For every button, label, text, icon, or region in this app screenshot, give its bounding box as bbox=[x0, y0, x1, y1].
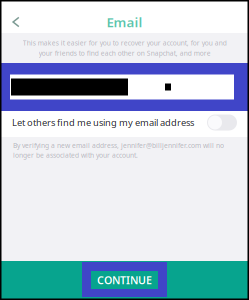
button[interactable]: Email address bbox=[10, 74, 234, 99]
button[interactable]: Let others find me using my email addres… bbox=[0, 111, 249, 137]
staticText: CONTINUE bbox=[97, 273, 152, 287]
staticText: This makes it easier for you to recover … bbox=[22, 38, 226, 58]
staticText: By verifying a new email address, jennif… bbox=[13, 141, 224, 160]
button[interactable]: Back bbox=[0, 14, 44, 30]
button[interactable]: CONTINUE bbox=[82, 262, 167, 297]
staticText: Let others find me using my email addres… bbox=[12, 116, 194, 129]
staticText: Email bbox=[106, 13, 142, 31]
